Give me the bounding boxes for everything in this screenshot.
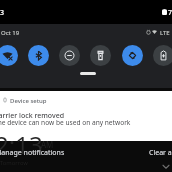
staticText: 73% — [168, 8, 172, 18]
button[interactable]: Manage notifications — [0, 148, 65, 158]
button[interactable]: Device setup — [0, 91, 172, 141]
button[interactable]: Expand — [163, 164, 169, 169]
button[interactable]: Do Not Disturb — [59, 45, 80, 66]
staticText: Tomorrow — [0, 159, 28, 167]
button[interactable]: Clear all — [149, 148, 172, 158]
button[interactable]: Flashlight — [90, 45, 111, 66]
staticText: The device can now be used on any networ… — [0, 118, 131, 127]
button[interactable]: Expand quick settings — [80, 72, 96, 75]
staticText: Carrier lock removed — [0, 111, 65, 121]
button[interactable]: Battery saver — [153, 45, 172, 66]
button[interactable]: Bluetooth — [28, 45, 49, 66]
staticText: AM — [41, 139, 54, 150]
staticText: LTE — [160, 29, 170, 37]
button[interactable]: Wi-Fi — [0, 45, 18, 66]
button[interactable]: Auto rotate — [122, 45, 143, 66]
staticText: Device setup — [10, 97, 47, 105]
staticText: 2:13 — [0, 8, 4, 18]
staticText: 2:13 — [0, 128, 43, 161]
staticText: Oct 19 — [1, 29, 20, 37]
